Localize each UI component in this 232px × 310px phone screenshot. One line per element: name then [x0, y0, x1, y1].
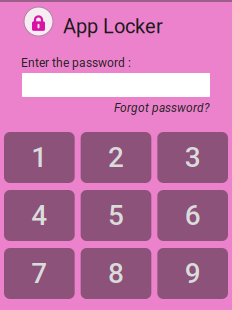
- staticText: 3: [185, 141, 201, 174]
- staticText: 1: [31, 141, 47, 174]
- button[interactable]: 5: [81, 190, 151, 241]
- button[interactable]: 9: [157, 248, 228, 299]
- staticText: Enter the password :: [21, 56, 131, 70]
- staticText: 8: [108, 257, 124, 290]
- button[interactable]: 7: [4, 248, 75, 299]
- button[interactable]: 6: [157, 190, 228, 241]
- staticText: 6: [185, 199, 201, 232]
- staticText: 9: [185, 257, 201, 290]
- button[interactable]: 3: [157, 132, 228, 183]
- button[interactable]: 2: [81, 132, 151, 183]
- staticText: 2: [108, 141, 124, 174]
- staticText: App Locker: [63, 15, 163, 38]
- staticText: 4: [31, 199, 47, 232]
- button[interactable]: Forgot password?: [114, 101, 210, 115]
- button[interactable]: 1: [4, 132, 75, 183]
- button[interactable]: 8: [81, 248, 151, 299]
- staticText: Forgot password?: [114, 101, 210, 115]
- staticText: 7: [31, 257, 47, 290]
- button[interactable]: 4: [4, 190, 75, 241]
- staticText: 5: [108, 199, 124, 232]
